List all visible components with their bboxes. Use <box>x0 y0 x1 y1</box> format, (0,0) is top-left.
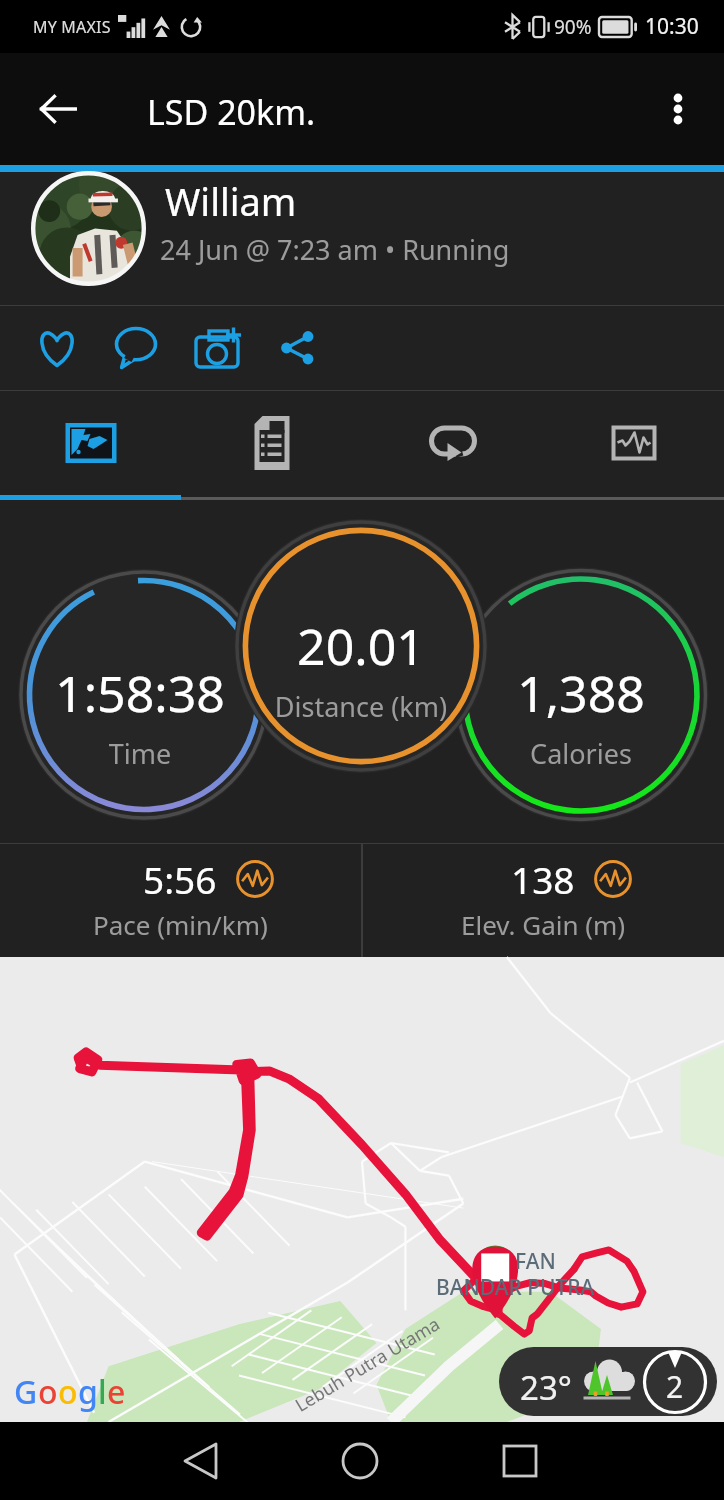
staticText: 5:56 <box>143 854 217 904</box>
staticText: e <box>107 1370 126 1414</box>
button[interactable]: Add photo <box>184 315 250 381</box>
button[interactable]: Like <box>24 315 90 381</box>
staticText: 23° <box>520 1365 572 1410</box>
staticText: Pace (min/km) <box>93 907 268 942</box>
staticText: 2 <box>666 1366 684 1407</box>
staticText: 90% <box>554 14 592 40</box>
button[interactable]: FAN <box>0 957 724 1422</box>
button[interactable]: 5:56 <box>0 844 361 957</box>
staticText: 24 Jun @ 7:23 am • Running <box>160 231 510 268</box>
button[interactable]: Share <box>265 315 331 381</box>
staticText: 138 <box>511 854 575 904</box>
staticText: Calories <box>461 735 701 772</box>
button[interactable]: 23° <box>499 1347 717 1416</box>
button[interactable]: Back <box>22 73 94 145</box>
staticText: Lebuh Putra Utama <box>290 1311 445 1418</box>
button[interactable]: Recent apps <box>480 1422 560 1500</box>
staticText: Time <box>20 735 260 772</box>
staticText: MY MAXIS <box>33 16 111 38</box>
staticText: Elev. Gain (m) <box>461 907 626 942</box>
staticText: G <box>14 1370 38 1414</box>
button[interactable]: Details <box>181 391 362 495</box>
staticText: 1:58:38 <box>20 659 260 727</box>
staticText: FAN <box>515 1247 556 1276</box>
button[interactable]: Charts <box>543 391 724 495</box>
button[interactable]: Back <box>161 1422 241 1500</box>
staticText: Distance (km) <box>241 688 481 725</box>
button[interactable]: Map <box>0 391 181 495</box>
staticText: 10:30 <box>645 12 699 41</box>
staticText: 20.01 <box>241 612 481 680</box>
button[interactable]: More options <box>646 77 710 141</box>
staticText: LSD 20km. <box>147 89 316 135</box>
button[interactable]: Laps <box>362 391 543 495</box>
button[interactable]: Comment <box>103 315 169 381</box>
staticText: g <box>78 1370 98 1414</box>
staticText: BANDAR PUTRA <box>436 1273 595 1302</box>
button[interactable]: 138 <box>363 844 724 957</box>
staticText: 1,388 <box>461 659 701 727</box>
button[interactable]: Home <box>320 1422 400 1500</box>
button[interactable]: William <box>0 172 724 305</box>
staticText: l <box>98 1370 107 1414</box>
staticText: o <box>38 1370 58 1414</box>
staticText: William <box>165 175 297 227</box>
staticText: o <box>58 1370 78 1414</box>
